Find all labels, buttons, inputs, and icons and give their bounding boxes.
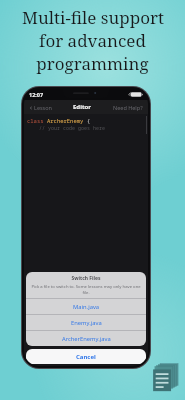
staticText: Cancel (76, 353, 96, 361)
button[interactable]: ArcherEnemy.java (26, 331, 146, 346)
button[interactable]: Enemy.java (26, 315, 146, 330)
staticText: Main.java (73, 303, 100, 311)
staticText: Editor (73, 103, 91, 111)
staticText: Pick a file to switch to. Some lessons m… (29, 284, 143, 295)
staticText: Switch Files (71, 275, 101, 282)
staticText: class (27, 117, 47, 124)
button[interactable]: Cancel (26, 349, 146, 364)
staticText: 12:07 (29, 91, 44, 98)
staticText: Lesson (34, 104, 52, 111)
button[interactable]: Need Help? (112, 102, 144, 113)
button[interactable]: Lesson (28, 102, 53, 113)
staticText: Enemy.java (71, 319, 102, 327)
staticText: for advanced (39, 29, 146, 52)
staticText: // your code goes here (27, 125, 106, 132)
staticText: { (87, 117, 91, 124)
staticText: ArcherEnemy.java (62, 335, 111, 343)
button[interactable]: Files (148, 363, 180, 395)
staticText: Multi-file support (22, 6, 164, 29)
button[interactable]: Main.java (26, 299, 146, 314)
staticText: ArcherEnemy (47, 117, 87, 124)
staticText: programming (36, 52, 149, 75)
